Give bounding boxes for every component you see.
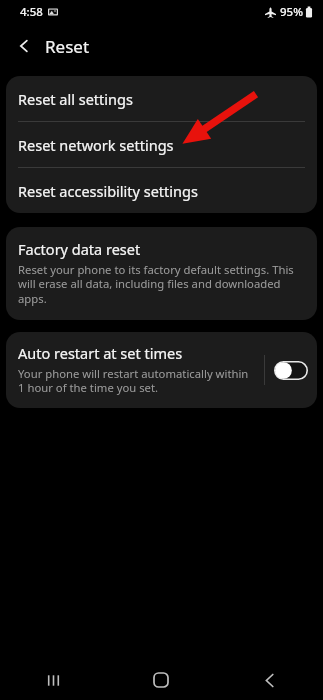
button[interactable]: Reset network settings	[6, 122, 317, 167]
button[interactable]: Auto restart at set times	[6, 332, 264, 408]
button[interactable]: Home	[107, 660, 215, 700]
staticText: Reset all settings	[18, 89, 133, 109]
staticText: 4:58	[20, 4, 43, 20]
staticText: 95%	[280, 4, 303, 20]
button[interactable]: Reset accessibility settings	[6, 168, 317, 213]
button[interactable]: Factory data reset	[6, 227, 317, 320]
button[interactable]: Back	[0, 24, 42, 68]
button[interactable]: Back	[215, 660, 323, 700]
staticText: Your phone will restart automatically wi…	[18, 366, 256, 396]
staticText: Factory data reset	[18, 239, 141, 259]
staticText: Reset accessibility settings	[18, 181, 198, 201]
button[interactable]: Auto restart toggle, off	[265, 347, 317, 394]
button[interactable]: Recent apps	[0, 660, 107, 700]
staticText: Auto restart at set times	[18, 343, 183, 363]
staticText: Reset network settings	[18, 135, 174, 155]
staticText: Reset your phone to its factory default …	[18, 262, 303, 307]
button[interactable]: Reset all settings	[6, 76, 317, 121]
staticText: Reset	[45, 35, 90, 58]
